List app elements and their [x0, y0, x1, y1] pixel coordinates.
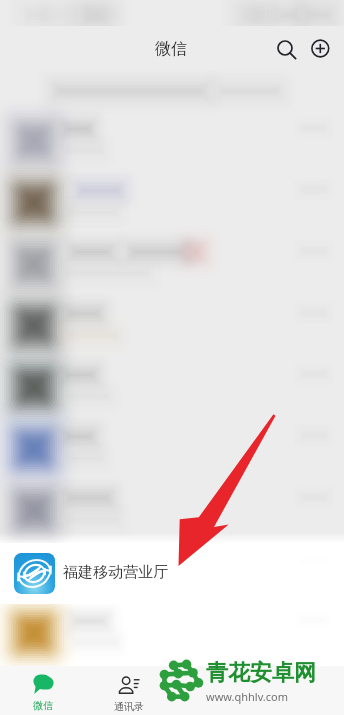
staticText: 通讯录 — [114, 700, 144, 713]
button[interactable]: Add — [303, 31, 337, 65]
button[interactable]: 通讯录 — [86, 666, 172, 715]
button[interactable] — [0, 484, 344, 546]
staticText: 微信 — [155, 39, 187, 59]
staticText: www.qhhlv.com — [206, 689, 288, 704]
button[interactable] — [0, 112, 344, 174]
button[interactable]: 福建移动营业厅 — [0, 543, 344, 604]
button[interactable] — [0, 298, 344, 360]
button[interactable] — [0, 422, 344, 484]
staticText: 青花安卓网 — [206, 659, 316, 687]
staticText: 微信 — [33, 699, 53, 712]
button[interactable] — [0, 236, 344, 298]
button[interactable]: Search — [268, 31, 302, 65]
button[interactable]: 微信 — [0, 666, 86, 715]
button[interactable] — [258, 666, 344, 715]
button[interactable] — [172, 666, 258, 715]
staticText: 福建移动营业厅 — [63, 563, 168, 582]
button[interactable] — [0, 360, 344, 422]
button[interactable] — [0, 174, 344, 236]
